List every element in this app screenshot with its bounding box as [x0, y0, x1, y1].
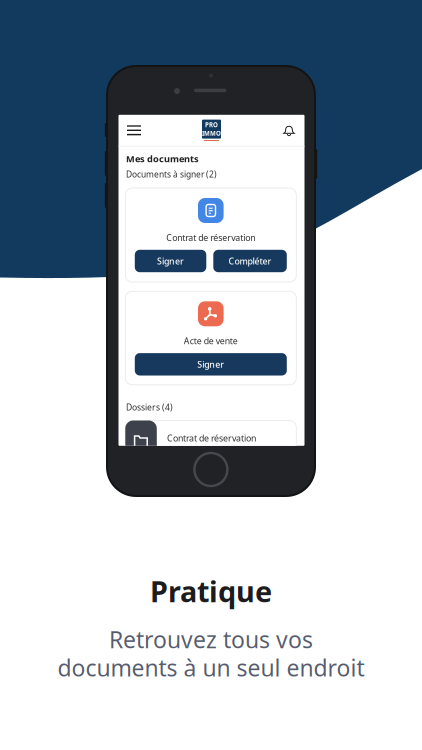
- staticText: Dossiers (4): [126, 401, 173, 413]
- staticText: Pratique: [150, 571, 272, 611]
- staticText: Signer: [197, 358, 224, 370]
- staticText: Documents à signer (2): [126, 168, 217, 180]
- staticText: PRO: [205, 121, 218, 129]
- staticText: IMMO: [202, 129, 221, 137]
- staticText: documents à un seul endroit: [57, 652, 364, 683]
- staticText: Acte de vente: [184, 335, 238, 347]
- staticText: Signer: [157, 255, 184, 267]
- button[interactable]: Compléter: [213, 250, 287, 272]
- button[interactable]: Signer: [135, 250, 206, 272]
- staticText: Retrouvez tous vos: [109, 624, 313, 655]
- staticText: Contrat de réservation: [167, 432, 256, 444]
- button[interactable]: Notifications: [277, 115, 301, 146]
- button[interactable]: Menu: [122, 115, 146, 146]
- staticText: Mes documents: [126, 152, 199, 165]
- staticText: Contrat de réservation: [166, 231, 255, 243]
- staticText: Compléter: [229, 255, 272, 267]
- button[interactable]: Signer: [135, 353, 287, 375]
- button[interactable]: Contrat de réservation: [125, 420, 296, 462]
